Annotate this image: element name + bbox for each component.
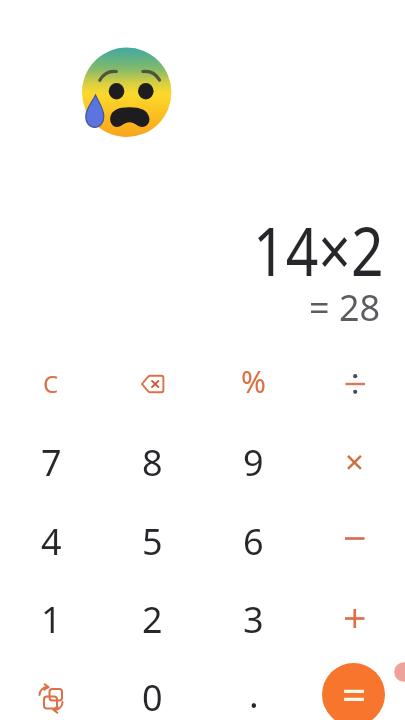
staticText: 0 xyxy=(142,673,163,720)
button[interactable]: C xyxy=(0,344,102,423)
button[interactable]: 0 xyxy=(102,658,203,720)
button[interactable] xyxy=(304,502,405,580)
staticText: 4 xyxy=(41,517,62,566)
button[interactable]: 3 xyxy=(203,580,304,658)
button[interactable]: 9 xyxy=(203,423,304,502)
staticText: 6 xyxy=(243,517,264,566)
staticText: 2 xyxy=(142,595,163,644)
staticText: . xyxy=(249,670,259,719)
staticText: % xyxy=(241,361,266,402)
staticText: × xyxy=(345,439,364,484)
button[interactable]: 5 xyxy=(102,502,203,580)
button[interactable]: 1 xyxy=(0,580,102,658)
button[interactable]: 4 xyxy=(0,502,102,580)
button[interactable] xyxy=(102,344,203,423)
button[interactable]: × xyxy=(304,423,405,502)
staticText: 3 xyxy=(243,595,264,644)
staticText: 5 xyxy=(142,517,163,566)
button[interactable] xyxy=(304,658,405,720)
button[interactable]: . xyxy=(203,658,304,720)
button[interactable] xyxy=(0,658,102,720)
staticText: = 28 xyxy=(309,283,381,332)
staticText: 9 xyxy=(243,438,264,487)
button[interactable]: 8 xyxy=(102,423,203,502)
button[interactable] xyxy=(322,663,385,720)
staticText: 8 xyxy=(142,438,163,487)
staticText: 1 xyxy=(41,595,62,644)
staticText: C xyxy=(43,367,59,400)
staticText: 14×2 xyxy=(253,203,384,296)
button[interactable]: 6 xyxy=(203,502,304,580)
button[interactable] xyxy=(304,580,405,658)
button[interactable]: % xyxy=(203,344,304,423)
staticText: 7 xyxy=(41,438,62,487)
button[interactable]: 7 xyxy=(0,423,102,502)
button[interactable] xyxy=(304,344,405,423)
button[interactable]: 2 xyxy=(102,580,203,658)
